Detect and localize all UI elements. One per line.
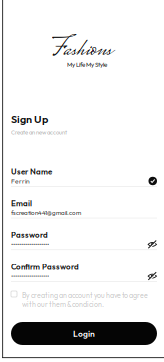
button[interactable]: Agree to terms and conditions [11, 291, 17, 297]
staticText: Ferrin [11, 177, 30, 185]
staticText: ••••••••••••••••••• [11, 240, 49, 249]
staticText: fscreation441@gmail.com [11, 209, 81, 217]
staticText: Create an new account [11, 129, 67, 136]
staticText: Fashions [52, 31, 111, 71]
staticText: By creating an account you have to agree… [22, 291, 148, 309]
staticText: Password [11, 230, 48, 240]
staticText: Sign Up [11, 112, 48, 126]
staticText: User Name [11, 166, 52, 177]
staticText: Email [11, 198, 32, 208]
button[interactable]: Login [11, 322, 157, 345]
staticText: Confirm Password [11, 262, 79, 272]
staticText: Login [73, 328, 95, 339]
staticText: ••••••••••••••••••• [11, 272, 49, 280]
staticText: My Life My Style [67, 61, 107, 68]
